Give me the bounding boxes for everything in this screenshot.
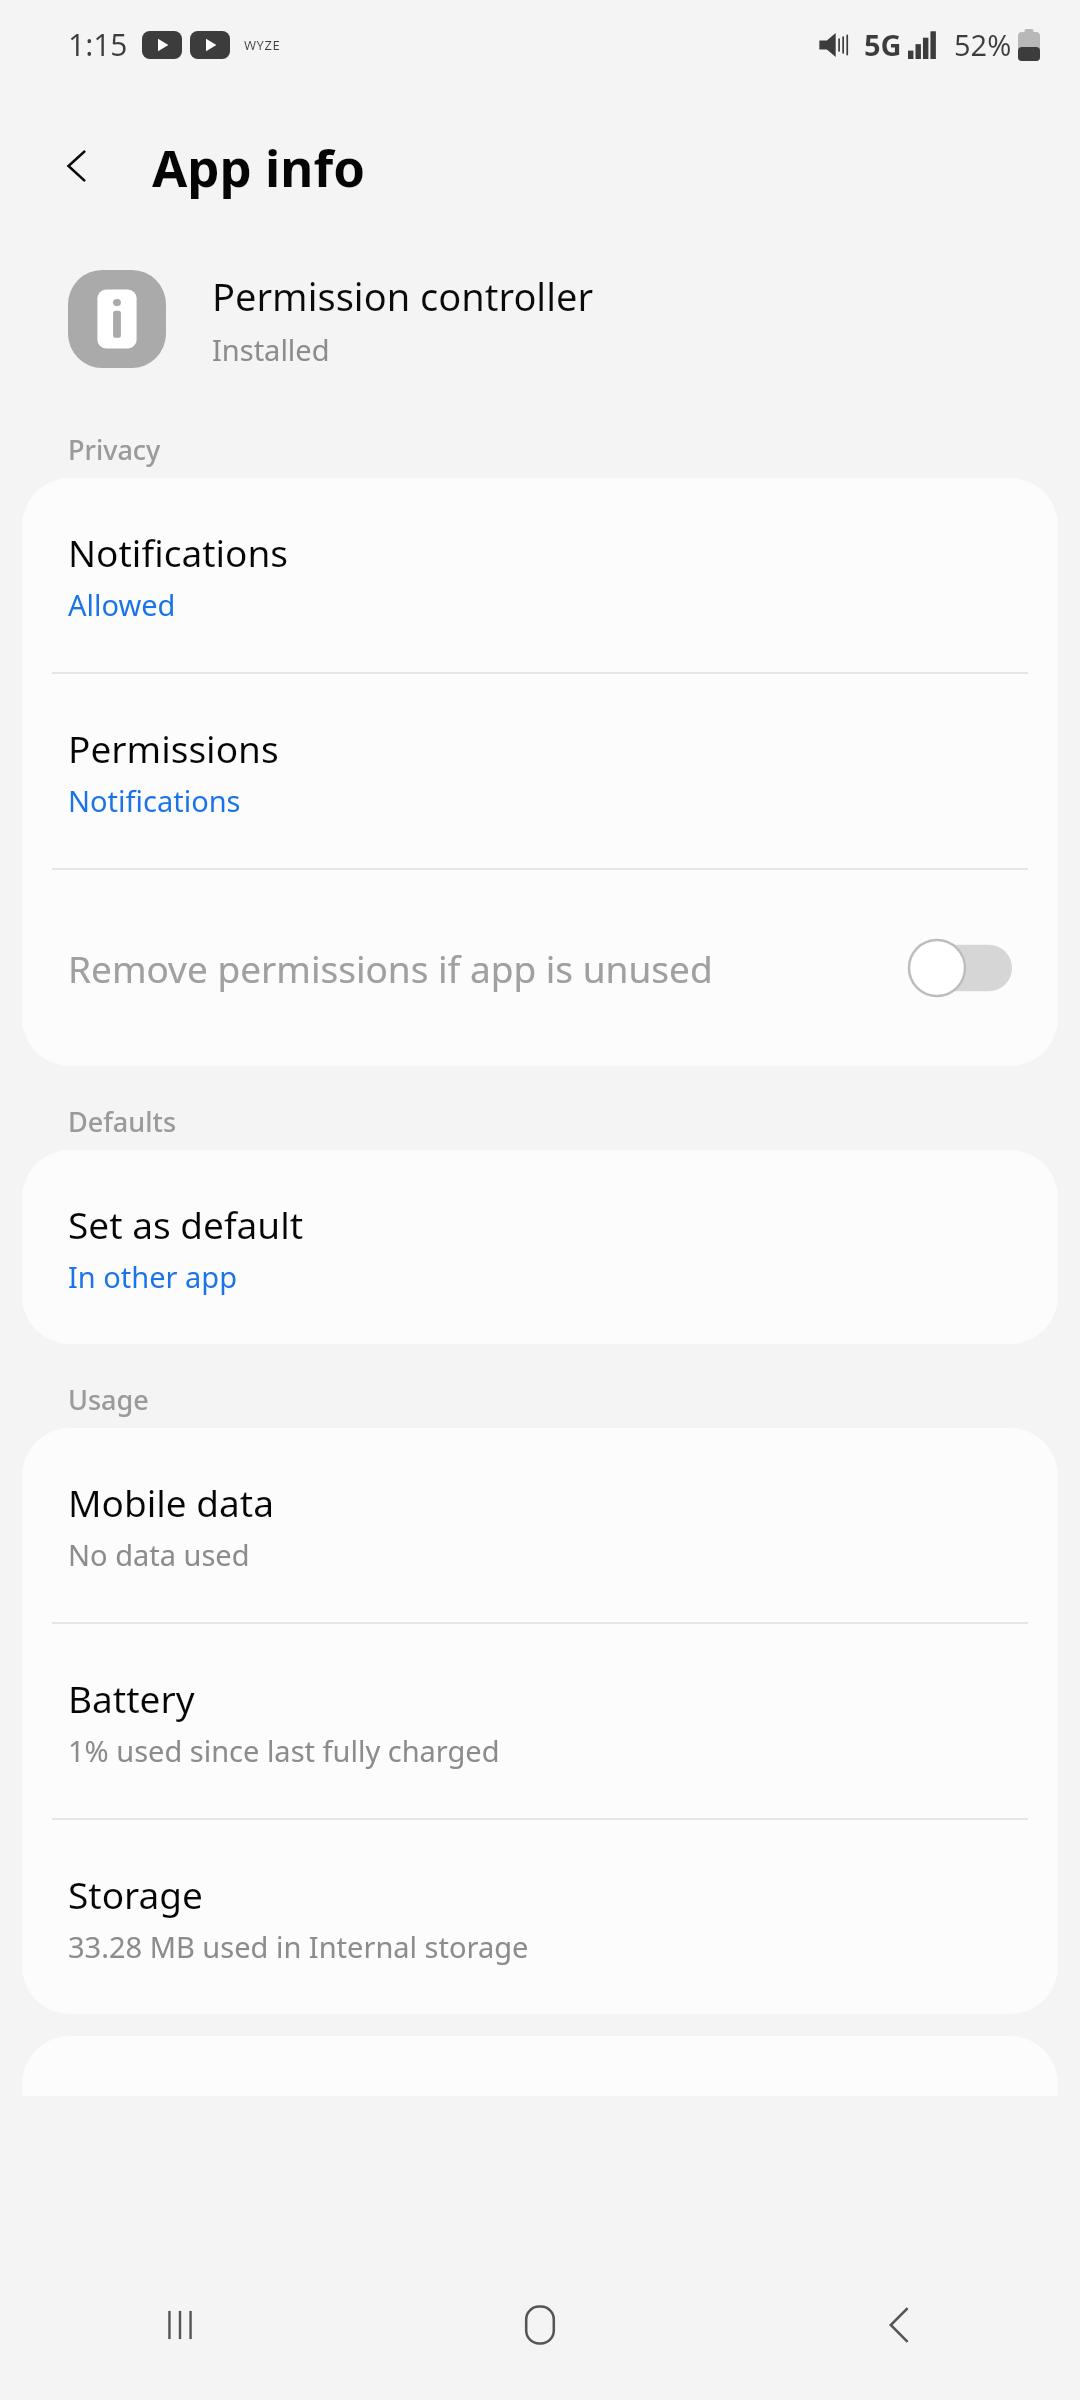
staticText: Mobile data — [68, 1477, 274, 1527]
staticText: Remove permissions if app is unused — [68, 943, 713, 993]
staticText: 1% used since last fully charged — [68, 1731, 500, 1770]
staticText: Installed — [212, 330, 330, 369]
button[interactable]: Remove permissions if app is unused — [22, 870, 1058, 1066]
staticText: Battery — [68, 1673, 195, 1723]
button[interactable]: Recents — [0, 2250, 360, 2400]
staticText: No data used — [68, 1535, 250, 1574]
button[interactable]: Back — [720, 2250, 1080, 2400]
button[interactable]: Mobile data — [22, 1428, 1058, 1622]
staticText: 52% — [954, 25, 1012, 64]
staticText: Storage — [68, 1869, 203, 1919]
staticText: Notifications — [68, 781, 241, 820]
staticText: Allowed — [68, 585, 176, 624]
staticText: WYZE — [244, 36, 281, 54]
staticText: Notifications — [68, 527, 289, 577]
staticText: 1:15 — [68, 24, 128, 65]
staticText: Privacy — [68, 431, 161, 468]
staticText: Set as default — [68, 1199, 304, 1249]
staticText: App info — [152, 132, 366, 201]
button[interactable]: Back — [42, 130, 114, 202]
staticText: 5G — [864, 25, 902, 64]
staticText: 33.28 MB used in Internal storage — [68, 1927, 529, 1966]
button[interactable]: Battery — [22, 1624, 1058, 1818]
button[interactable]: Permission controller — [0, 244, 1080, 394]
staticText: Permission controller — [212, 270, 594, 322]
staticText: Defaults — [68, 1103, 176, 1140]
button[interactable]: Set as default — [22, 1150, 1058, 1344]
button[interactable]: Permissions — [22, 674, 1058, 868]
staticText: Usage — [68, 1381, 149, 1418]
staticText: In other app — [68, 1257, 238, 1296]
staticText: Permissions — [68, 723, 279, 773]
button[interactable]: Notifications — [22, 478, 1058, 672]
button[interactable]: Home — [360, 2250, 720, 2400]
button[interactable]: Storage — [22, 1820, 1058, 2014]
